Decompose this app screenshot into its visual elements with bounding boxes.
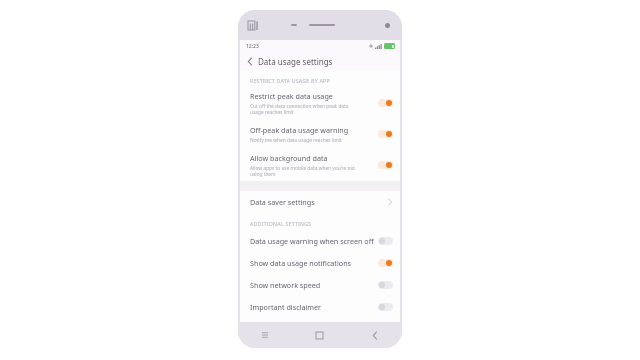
button[interactable]: Back — [347, 322, 402, 348]
button[interactable]: Restrict peak data usage — [240, 87, 400, 119]
staticText: Cut off the data connection when peak da… — [250, 103, 349, 115]
staticText: RESTRICT DATA USAGE BY APP — [250, 77, 330, 84]
staticText: Restrict peak data usage — [250, 91, 333, 101]
button[interactable]: Back — [244, 56, 255, 67]
button[interactable]: Toggle off — [378, 281, 393, 289]
button[interactable]: Recent apps — [238, 322, 292, 348]
staticText: Data usage settings — [258, 56, 333, 67]
button[interactable]: Toggle on — [378, 130, 393, 138]
button[interactable]: Show data usage notifications — [240, 252, 400, 274]
staticText: Data saver settings — [250, 197, 388, 207]
button[interactable]: Toggle on — [378, 259, 393, 267]
button[interactable]: Data saver settings — [240, 191, 400, 213]
staticText: Show data usage notifications — [250, 258, 352, 268]
button[interactable]: Toggle off — [378, 303, 393, 311]
button[interactable]: Show network speed — [240, 274, 400, 296]
staticText: 12:23 — [246, 43, 259, 50]
button[interactable]: Toggle on — [378, 161, 393, 169]
button[interactable]: Data usage warning when screen off — [240, 230, 400, 252]
button[interactable]: Home — [292, 322, 347, 348]
staticText: ADDITIONAL SETTINGS — [250, 220, 312, 227]
staticText: Notify me when data usage reaches limit — [250, 137, 342, 144]
staticText: Data usage warning when screen off — [250, 236, 374, 246]
staticText: Important disclaimer — [250, 302, 322, 312]
button[interactable]: Toggle on — [378, 99, 393, 107]
button[interactable]: Off-peak data usage warning — [240, 119, 400, 149]
button[interactable]: Important disclaimer — [240, 296, 400, 318]
button[interactable]: Allow background data — [240, 149, 400, 181]
staticText: Allow apps to use mobile data when you'r… — [250, 165, 356, 177]
button[interactable]: Toggle off — [378, 237, 393, 245]
staticText: Off-peak data usage warning — [250, 125, 349, 135]
staticText: Allow background data — [250, 153, 328, 163]
staticText: Show network speed — [250, 280, 321, 290]
